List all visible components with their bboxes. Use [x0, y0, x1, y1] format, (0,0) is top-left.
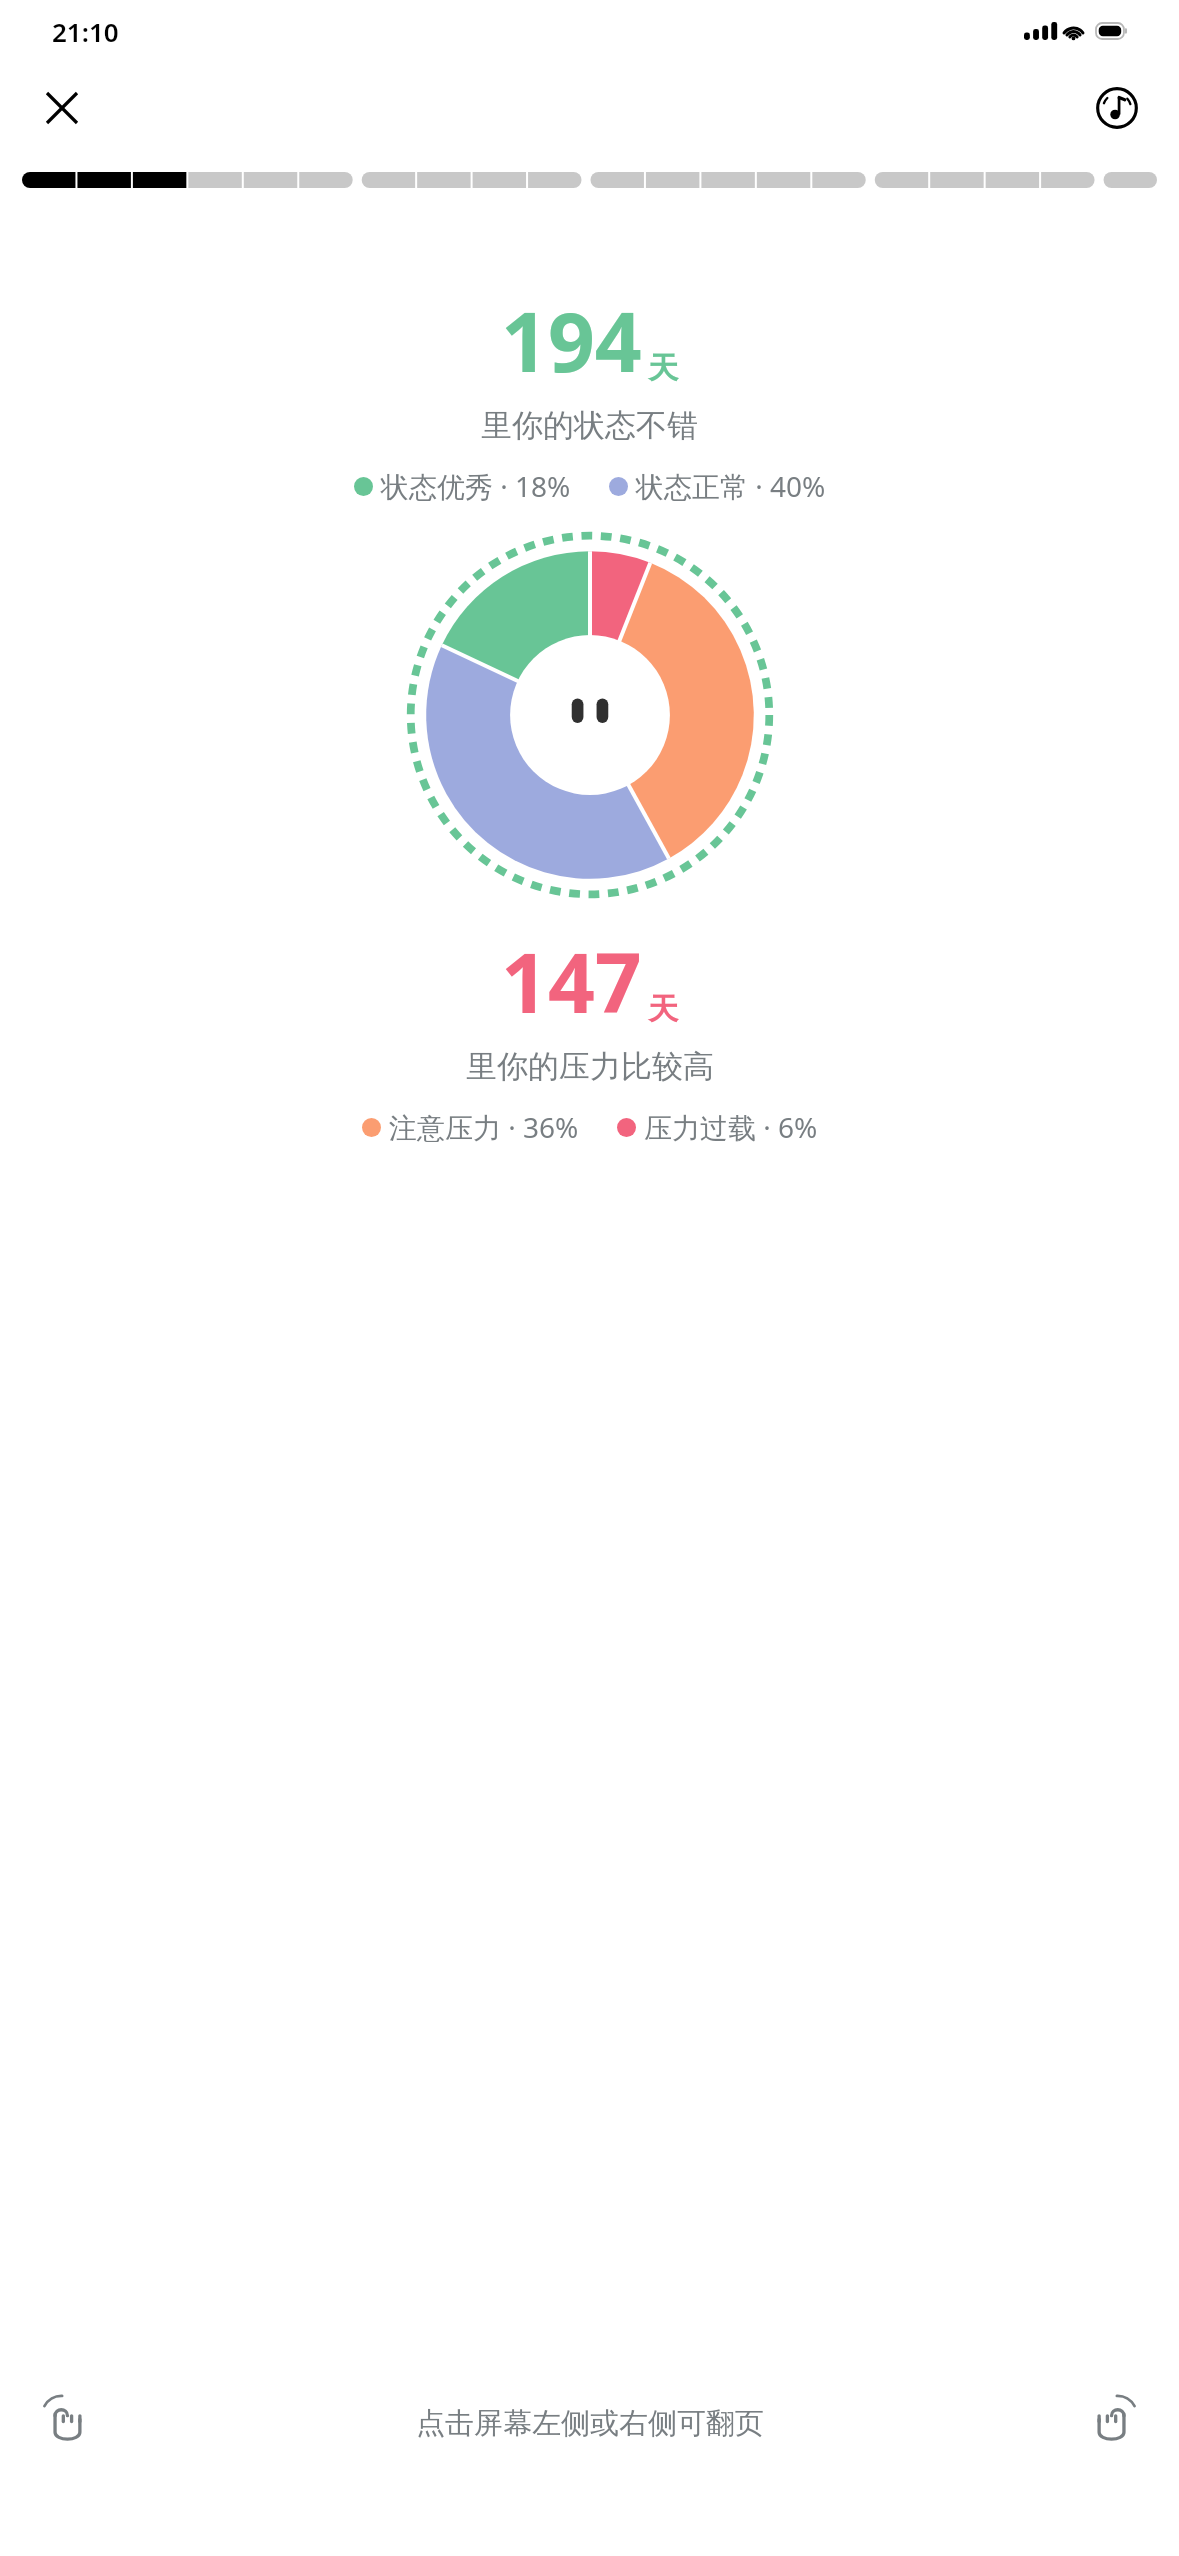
- button[interactable]: Next page: [1083, 2394, 1141, 2452]
- staticText: 状态优秀 · 18%: [381, 467, 571, 505]
- button[interactable]: Music: [1089, 80, 1145, 136]
- staticText: 147: [501, 925, 642, 1037]
- staticText: 注意压力 · 36%: [389, 1108, 579, 1146]
- staticText: 里你的状态不错: [481, 406, 698, 445]
- staticText: 194: [501, 284, 642, 396]
- staticText: 21:10: [52, 14, 119, 49]
- staticText: 里你的压力比较高: [466, 1047, 714, 1086]
- button[interactable]: Close: [34, 80, 90, 136]
- button[interactable]: Previous page: [38, 2394, 96, 2452]
- staticText: 点击屏幕左侧或右侧可翻页: [416, 2405, 764, 2442]
- staticText: 压力过载 · 6%: [644, 1108, 818, 1146]
- staticText: 天: [648, 990, 678, 1028]
- staticText: 状态正常 · 40%: [636, 467, 826, 505]
- staticText: 天: [648, 349, 678, 387]
